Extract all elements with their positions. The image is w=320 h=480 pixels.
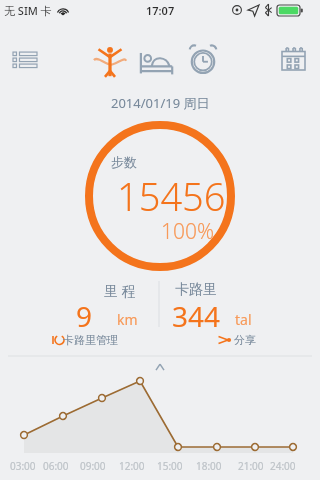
button[interactable]: Steps <box>92 42 128 78</box>
staticText: 24:00 <box>270 459 296 473</box>
staticText: 卡路里 <box>175 281 217 299</box>
staticText: 无 SIM 卡 <box>4 3 52 18</box>
button[interactable]: Sleep <box>138 44 174 76</box>
staticText: 17:07 <box>146 3 175 18</box>
staticText: 21:00 <box>238 459 264 473</box>
button[interactable]: 卡路里管理 <box>50 330 142 350</box>
staticText: 卡路里管理 <box>63 333 118 347</box>
button[interactable]: 步数 <box>85 121 235 271</box>
staticText: 步数 <box>111 154 137 170</box>
staticText: 2014/01/19 周日 <box>111 94 210 112</box>
staticText: tal <box>235 310 252 329</box>
staticText: 9 <box>76 297 93 335</box>
button[interactable]: List <box>8 43 42 77</box>
button[interactable]: Collapse <box>150 360 170 374</box>
staticText: km <box>117 310 138 329</box>
button[interactable]: 分享 <box>218 330 274 350</box>
button[interactable]: Calendar <box>278 43 310 75</box>
staticText: 15456 <box>117 170 226 222</box>
staticText: 里 程 <box>104 281 136 300</box>
staticText: 18:00 <box>196 459 222 473</box>
staticText: 15:00 <box>157 459 183 473</box>
staticText: 06:00 <box>43 459 69 473</box>
staticText: 09:00 <box>80 459 106 473</box>
staticText: 12:00 <box>119 459 145 473</box>
button[interactable]: Alarm <box>186 42 220 76</box>
staticText: 分享 <box>234 333 256 347</box>
staticText: 344 <box>172 297 221 335</box>
staticText: 100% <box>161 217 215 246</box>
staticText: 03:00 <box>10 459 36 473</box>
